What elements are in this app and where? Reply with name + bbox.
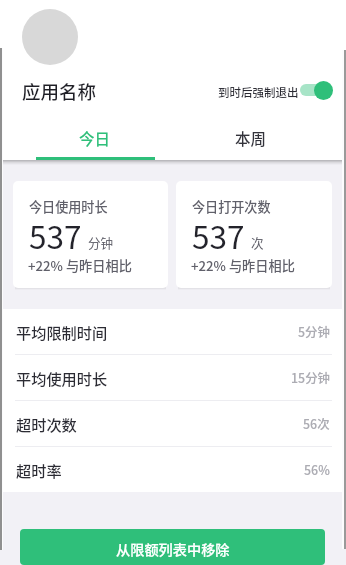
staticText: 本周 xyxy=(235,127,267,149)
staticText: 537 xyxy=(192,212,245,258)
staticText: 从限额列表中移除 xyxy=(116,539,230,560)
staticText: 5分钟 xyxy=(298,323,330,341)
button[interactable]: 到时后强制退出 xyxy=(300,80,333,100)
staticText: 到时后强制退出 xyxy=(218,84,299,101)
staticText: 次 xyxy=(251,233,264,251)
staticText: 超时次数 xyxy=(16,413,77,435)
staticText: +22% 与昨日相比 xyxy=(28,256,132,275)
staticText: 今日打开次数 xyxy=(192,197,271,216)
staticText: 15分钟 xyxy=(291,369,330,387)
button[interactable]: 平均使用时长 xyxy=(0,355,346,400)
button[interactable]: 平均限制时间 xyxy=(0,309,346,354)
button[interactable]: 超时次数 xyxy=(0,401,346,446)
staticText: 56% xyxy=(304,461,330,479)
staticText: 今日 xyxy=(79,127,111,149)
button[interactable]: 本周 xyxy=(173,116,329,160)
button[interactable]: 今日 xyxy=(17,116,173,160)
button[interactable]: 超时率 xyxy=(0,447,346,492)
staticText: 今日使用时长 xyxy=(29,197,108,216)
staticText: 分钟 xyxy=(88,233,114,251)
staticText: 平均限制时间 xyxy=(16,321,108,343)
staticText: 56次 xyxy=(303,415,330,433)
staticText: 应用名称 xyxy=(22,78,97,102)
staticText: 平均使用时长 xyxy=(16,367,108,389)
staticText: +22% 与昨日相比 xyxy=(191,256,295,275)
button[interactable]: 从限额列表中移除 xyxy=(20,529,325,565)
staticText: 超时率 xyxy=(16,459,62,481)
staticText: 537 xyxy=(29,212,82,258)
